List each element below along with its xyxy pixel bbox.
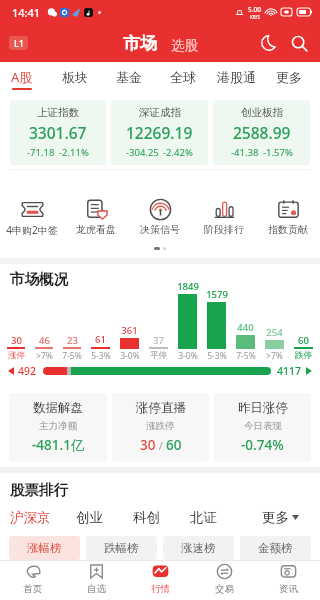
staticText: 4申购2中签 bbox=[6, 223, 58, 237]
button[interactable]: 上证指数 bbox=[10, 100, 106, 165]
staticText: -41.38 bbox=[231, 146, 259, 159]
staticText: 决策信号 bbox=[140, 223, 180, 236]
button[interactable]: 指数贡献 bbox=[256, 196, 320, 238]
staticText: 361 bbox=[121, 324, 138, 337]
staticText: 股票排行 bbox=[10, 481, 68, 499]
staticText: 自选 bbox=[87, 583, 106, 595]
staticText: 61 bbox=[95, 333, 106, 346]
button[interactable]: 金额榜 bbox=[240, 536, 311, 560]
staticText: -304.25 bbox=[126, 146, 159, 159]
staticText: 科创 bbox=[133, 509, 160, 526]
staticText: 492 bbox=[18, 364, 37, 378]
staticText: 数据解盘 bbox=[33, 400, 83, 416]
staticText: 60 bbox=[166, 436, 182, 454]
staticText: 7-5% bbox=[236, 350, 256, 362]
staticText: 主力净额 bbox=[39, 420, 77, 432]
button[interactable]: 龙虎看盘 bbox=[64, 196, 128, 238]
staticText: 交易 bbox=[215, 583, 234, 595]
staticText: 港股通 bbox=[217, 69, 256, 85]
staticText: 市场概况 bbox=[10, 270, 68, 288]
staticText: 1579 bbox=[206, 288, 228, 301]
button[interactable]: 4申购2中签 bbox=[0, 196, 64, 239]
button[interactable]: 自选 bbox=[64, 563, 128, 595]
staticText: 板块 bbox=[62, 69, 88, 85]
staticText: 更多 bbox=[262, 509, 289, 526]
button[interactable]: 资讯 bbox=[256, 563, 320, 595]
button[interactable]: 涨幅榜 bbox=[9, 536, 80, 560]
staticText: 跌停 bbox=[295, 350, 312, 361]
staticText: 30 bbox=[140, 436, 156, 454]
staticText: 创业板指 bbox=[241, 106, 283, 119]
staticText: L1 bbox=[14, 37, 24, 49]
staticText: 5-3% bbox=[207, 350, 227, 362]
staticText: >7% bbox=[36, 350, 53, 362]
staticText: 沪深京 bbox=[10, 509, 51, 526]
staticText: KB/S bbox=[250, 14, 260, 20]
button[interactable]: 决策信号 bbox=[128, 196, 192, 238]
staticText: 5.00 bbox=[248, 5, 261, 14]
button[interactable]: 交易 bbox=[192, 563, 256, 595]
staticText: 选股 bbox=[171, 37, 198, 54]
button[interactable]: 昨日涨停 bbox=[214, 393, 311, 462]
staticText: 阶段排行 bbox=[204, 223, 244, 236]
button[interactable]: A股 bbox=[0, 62, 45, 92]
button[interactable]: 板块 bbox=[52, 62, 98, 92]
staticText: 北证 bbox=[190, 509, 217, 526]
staticText: 更多 bbox=[276, 69, 302, 85]
staticText: 龙虎看盘 bbox=[76, 223, 116, 236]
staticText: -481.1亿 bbox=[32, 436, 85, 454]
staticText: 平停 bbox=[150, 350, 167, 361]
staticText: 资讯 bbox=[279, 583, 298, 595]
staticText: 跌幅榜 bbox=[104, 541, 139, 555]
staticText: 昨日涨停 bbox=[238, 400, 288, 416]
staticText: 基金 bbox=[116, 69, 142, 85]
staticText: 涨跌停 bbox=[146, 420, 175, 432]
button[interactable]: 深证成指 bbox=[111, 100, 208, 165]
button[interactable]: 阶段排行 bbox=[192, 196, 256, 238]
staticText: 37 bbox=[153, 334, 164, 347]
staticText: / bbox=[156, 438, 166, 453]
staticText: 30 bbox=[11, 334, 22, 347]
button[interactable]: 全球 bbox=[160, 62, 206, 92]
button[interactable]: Search bbox=[286, 30, 312, 56]
button[interactable]: 创业板指 bbox=[213, 100, 310, 165]
staticText: >7% bbox=[266, 350, 283, 362]
button[interactable]: 行情 bbox=[128, 563, 192, 595]
staticText: 12269.19 bbox=[126, 122, 193, 143]
staticText: 254 bbox=[266, 326, 283, 339]
staticText: 上证指数 bbox=[37, 106, 79, 119]
button[interactable]: 跌幅榜 bbox=[86, 536, 157, 560]
button[interactable]: 市场 bbox=[120, 31, 160, 56]
button[interactable]: 首页 bbox=[0, 563, 64, 595]
staticText: -0.74% bbox=[241, 436, 284, 454]
staticText: 金额榜 bbox=[258, 541, 293, 555]
button[interactable]: 基金 bbox=[106, 62, 152, 92]
button[interactable]: 创业 bbox=[64, 508, 114, 526]
staticText: 创业 bbox=[76, 509, 103, 526]
button[interactable]: 涨速榜 bbox=[163, 536, 234, 560]
button[interactable]: L1 quote level bbox=[9, 36, 28, 50]
button[interactable]: 更多 bbox=[262, 508, 299, 526]
button[interactable]: 科创 bbox=[121, 508, 171, 526]
button[interactable]: 涨停直播 bbox=[112, 393, 209, 462]
staticText: 涨幅榜 bbox=[27, 541, 62, 555]
staticText: 440 bbox=[237, 321, 254, 334]
staticText: -71.18 bbox=[27, 146, 55, 159]
button[interactable]: 数据解盘 bbox=[9, 393, 107, 462]
staticText: 3301.67 bbox=[29, 122, 87, 143]
button[interactable]: 沪深京 bbox=[5, 508, 55, 526]
staticText: -2.11% bbox=[59, 146, 89, 159]
staticText: -1.57% bbox=[263, 146, 293, 159]
staticText: 涨速榜 bbox=[181, 541, 216, 555]
staticText: 深证成指 bbox=[139, 106, 181, 119]
staticText: 14:41 bbox=[12, 5, 41, 20]
button[interactable]: 选股 bbox=[168, 35, 201, 56]
staticText: 1849 bbox=[177, 280, 199, 293]
staticText: 3-0% bbox=[178, 350, 198, 362]
button[interactable]: 港股通 bbox=[213, 62, 259, 92]
staticText: 4117 bbox=[277, 364, 302, 378]
button[interactable]: Night mode bbox=[256, 30, 282, 56]
button[interactable]: 北证 bbox=[178, 508, 228, 526]
button[interactable]: 更多 bbox=[266, 62, 312, 92]
staticText: 3-0% bbox=[120, 350, 140, 362]
